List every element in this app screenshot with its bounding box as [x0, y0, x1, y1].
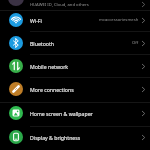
staticText: Home screen & wallpaper [30, 110, 93, 117]
button[interactable]: Mobile network [9, 55, 145, 77]
staticText: More connections [30, 86, 74, 93]
staticText: Display & brightness [30, 134, 81, 141]
staticText: Bluetooth [30, 40, 55, 47]
staticText: Mobile network [30, 63, 69, 70]
button[interactable]: Wi-Fi [9, 9, 145, 31]
button[interactable]: Display & brightness [9, 126, 145, 148]
staticText: HUAWEI ID, Cloud, and others [30, 2, 89, 8]
staticText: mcaccessoriesmesh [99, 17, 139, 23]
button[interactable]: HUAWEI ID, Cloud, and others [30, 0, 145, 9]
button[interactable]: Home screen & wallpaper [9, 102, 145, 124]
button[interactable]: More connections [9, 78, 145, 100]
staticText: Off [132, 40, 139, 46]
button[interactable]: Bluetooth [9, 32, 145, 54]
staticText: Wi-Fi [30, 17, 42, 24]
